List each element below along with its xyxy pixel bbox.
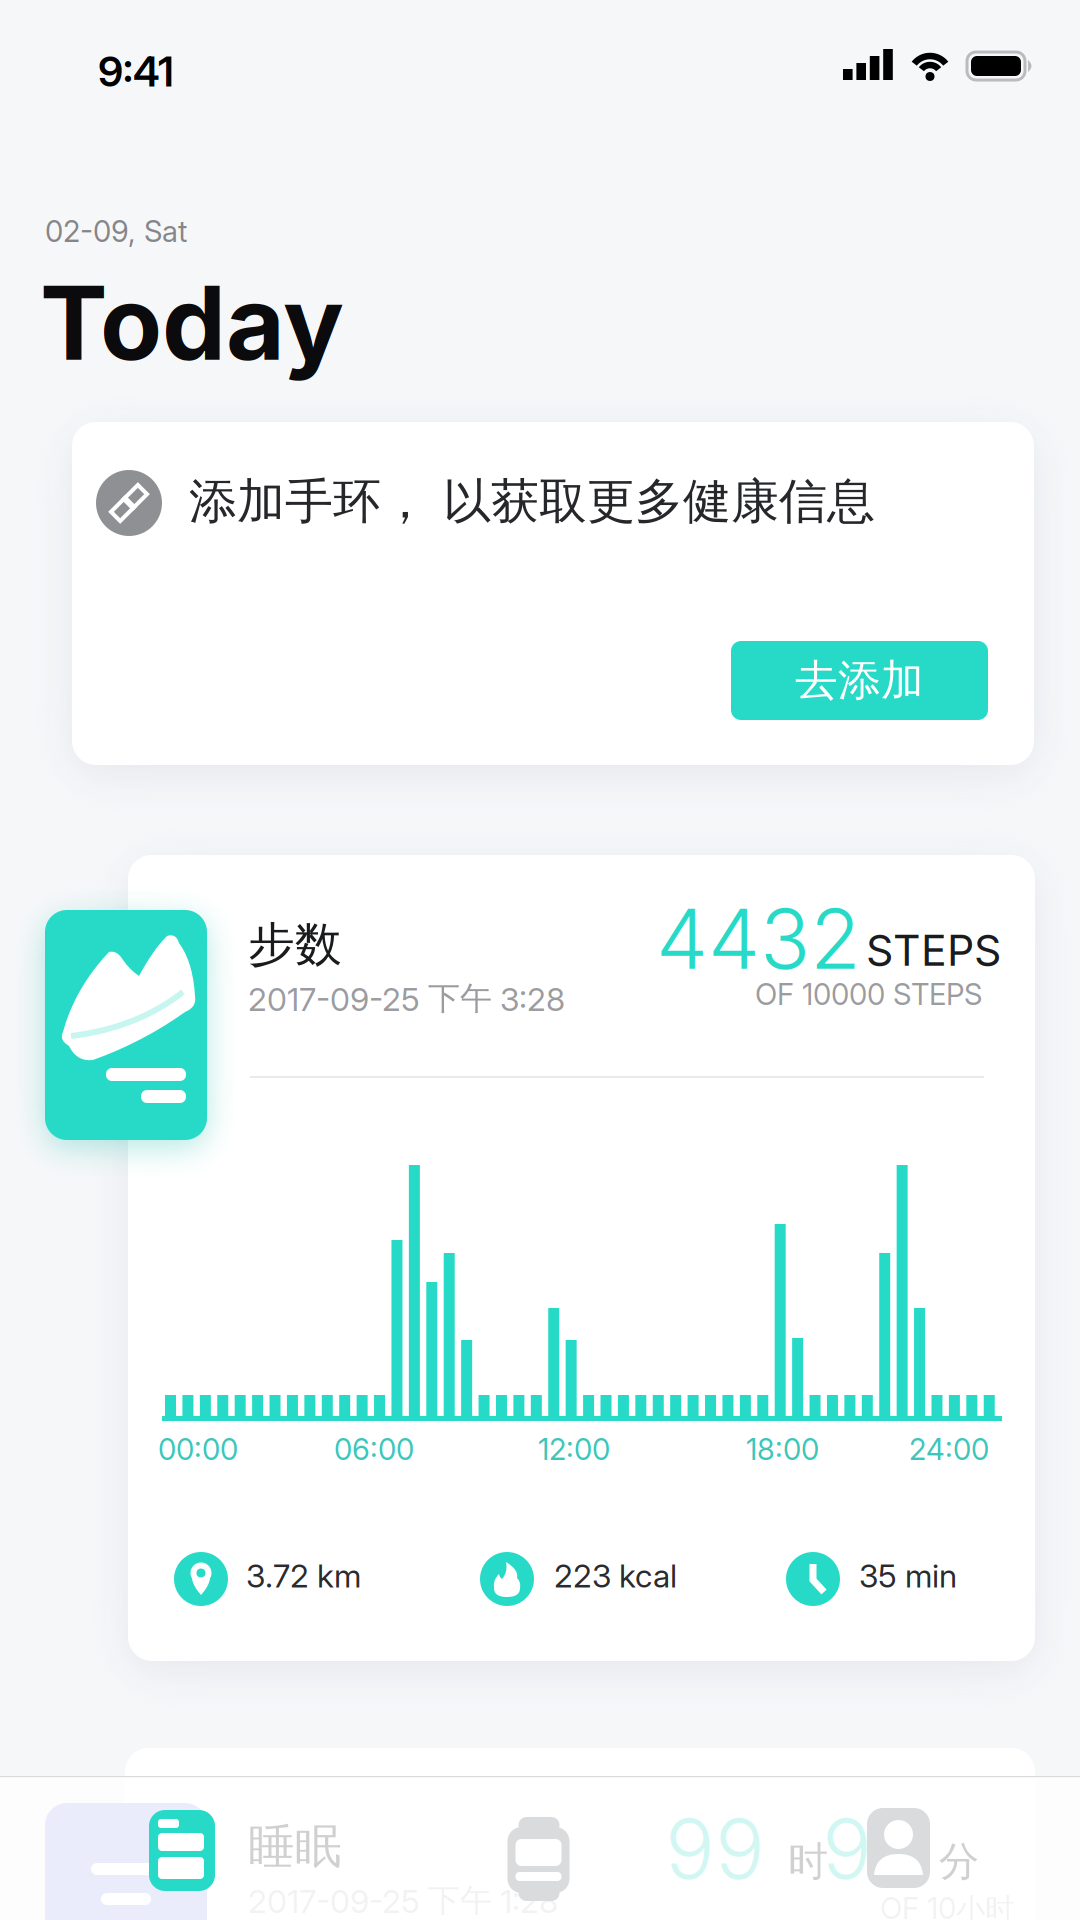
staticText: 18:00 — [746, 1432, 819, 1467]
button[interactable]: 去添加 — [731, 641, 988, 720]
button[interactable]: 步数 — [128, 855, 1035, 1661]
staticText: 02-09, Sat — [45, 214, 187, 249]
staticText: 睡眠 — [248, 1818, 342, 1875]
staticText: 去添加 — [795, 654, 924, 707]
staticText: 12:00 — [538, 1432, 610, 1467]
staticText: STEPS — [866, 925, 1001, 975]
staticText: 4432 — [656, 890, 861, 987]
staticText: 00:00 — [158, 1432, 238, 1467]
staticText: 223 kcal — [554, 1557, 677, 1595]
staticText: 分 — [939, 1837, 979, 1886]
staticText: 35 min — [859, 1557, 957, 1595]
staticText: 24:00 — [909, 1432, 989, 1467]
staticText: OF 10小时 — [880, 1891, 1014, 1920]
staticText: 2017-09-25 下午 1:28 — [248, 1881, 558, 1920]
button[interactable]: Profile — [867, 1808, 930, 1888]
button[interactable]: Devices — [507, 1808, 570, 1892]
staticText: 3.72 km — [246, 1557, 361, 1595]
staticText: Today — [40, 263, 344, 382]
button[interactable]: Status — [149, 1810, 215, 1891]
staticText: 步数 — [248, 916, 342, 973]
staticText: 2017-09-25 下午 3:28 — [248, 979, 565, 1018]
button[interactable]: 添加手环， 以获取更多健康信息 — [72, 422, 1034, 765]
staticText: 9:41 — [98, 47, 174, 96]
staticText: OF 10000 STEPS — [755, 977, 982, 1012]
staticText: 时 — [788, 1837, 828, 1886]
staticText: 99 — [665, 1800, 765, 1897]
staticText: 06:00 — [334, 1432, 414, 1467]
staticText: 添加手环， 以获取更多健康信息 — [189, 472, 875, 531]
staticText: 99 — [822, 1800, 922, 1897]
